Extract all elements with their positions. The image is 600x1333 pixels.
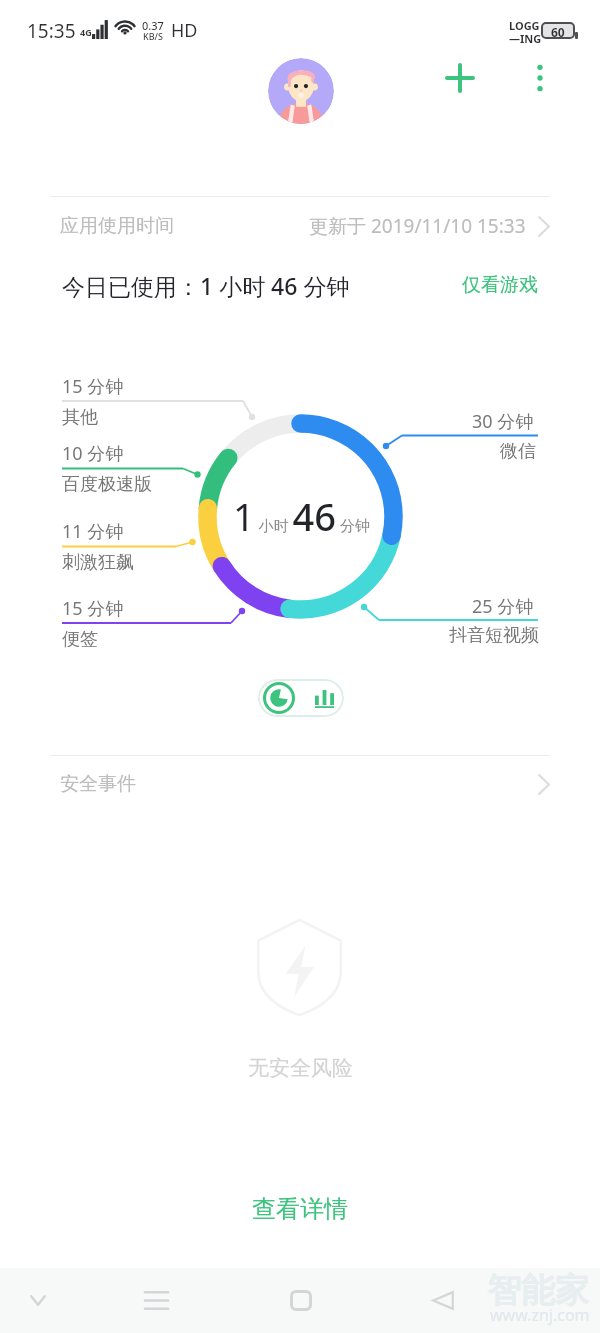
staticText: 11 分钟: [62, 519, 124, 544]
staticText: 更新于 2019/11/10 15:33: [309, 213, 526, 239]
staticText: 查看详情: [252, 1194, 348, 1224]
staticText: 25 分钟: [472, 594, 534, 619]
button[interactable]: 仅看游戏: [458, 269, 542, 301]
staticText: 应用使用时间: [60, 214, 174, 238]
staticText: 安全事件: [60, 772, 136, 796]
staticText: 4G: [80, 26, 92, 38]
button[interactable]: 查看详情: [234, 1186, 366, 1232]
button[interactable]: 应用使用时间: [0, 200, 600, 252]
staticText: KB/S: [143, 30, 163, 42]
button[interactable]: Bar chart view: [306, 680, 342, 716]
button[interactable]: Hide keyboard: [16, 1268, 60, 1333]
staticText: 无安全风险: [248, 1055, 353, 1081]
button[interactable]: Profile: [268, 58, 334, 124]
button[interactable]: Pie chart view: [261, 680, 297, 716]
staticText: 其他: [62, 406, 98, 429]
button[interactable]: Menu: [134, 1268, 178, 1333]
staticText: 1 小时 46 分钟: [233, 490, 370, 542]
button[interactable]: Back: [421, 1268, 465, 1333]
staticText: 今日已使用：1 小时 46 分钟: [62, 270, 350, 301]
staticText: 15 分钟: [62, 596, 124, 621]
staticText: 微信: [500, 440, 536, 463]
staticText: 抖音短视频: [449, 624, 539, 647]
staticText: 刺激狂飙: [62, 551, 134, 574]
staticText: 便签: [62, 628, 98, 651]
staticText: 15 分钟: [62, 374, 124, 399]
staticText: 仅看游戏: [462, 273, 538, 297]
staticText: 百度极速版: [62, 473, 152, 496]
staticText: www.znj.com: [490, 1304, 590, 1326]
staticText: 60: [551, 24, 565, 37]
staticText: 10 分钟: [62, 441, 124, 466]
staticText: LOGG: [509, 18, 540, 33]
button[interactable]: 安全事件: [0, 758, 600, 810]
staticText: 30 分钟: [472, 409, 534, 434]
button[interactable]: Home: [279, 1268, 323, 1333]
staticText: HD: [171, 18, 198, 43]
button[interactable]: More options: [514, 52, 566, 104]
staticText: 15:35: [27, 18, 76, 44]
button[interactable]: Add: [434, 52, 486, 104]
staticText: —ING: [509, 31, 542, 46]
staticText: 智能家: [487, 1269, 589, 1312]
staticText: 0.37: [142, 18, 164, 33]
